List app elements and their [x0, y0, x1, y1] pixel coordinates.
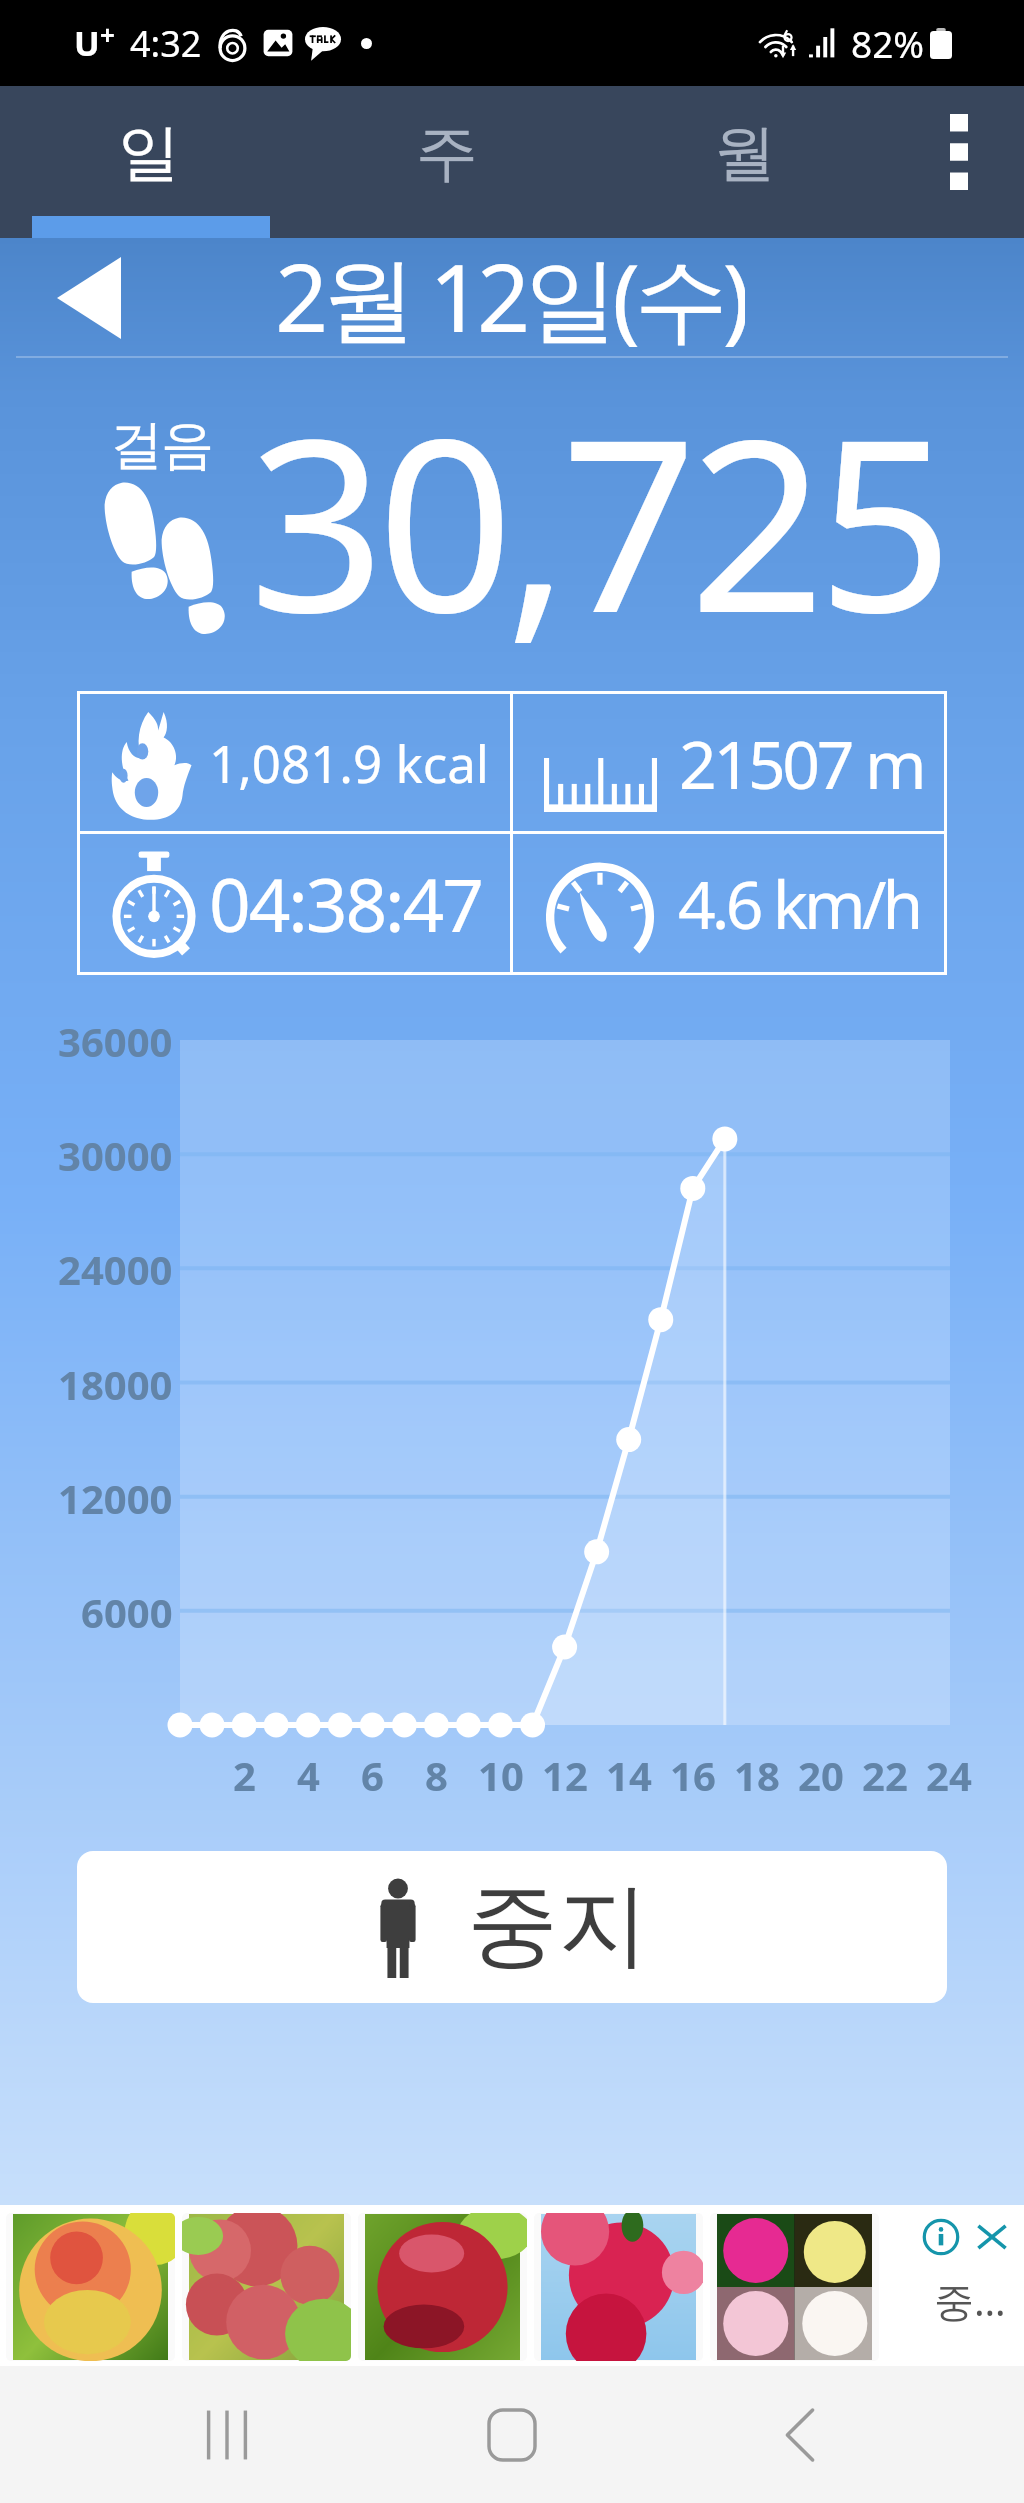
button[interactable]: [358, 2213, 527, 2361]
button[interactable]: 21507 m: [513, 694, 944, 831]
button[interactable]: [534, 2213, 703, 2361]
staticText: 주: [416, 114, 478, 192]
button[interactable]: 일: [0, 86, 298, 238]
staticText: 4: [297, 1748, 320, 1802]
staticText: +: [100, 17, 115, 52]
staticText: 14: [606, 1748, 652, 1802]
staticText: 30,725: [249, 358, 946, 682]
staticText: 중지: [467, 1868, 649, 1983]
button[interactable]: 중지: [77, 1851, 947, 2003]
staticText: 12000: [58, 1471, 173, 1525]
button[interactable]: More options: [894, 86, 1024, 238]
staticText: 16: [670, 1748, 716, 1802]
staticText: 8: [425, 1748, 448, 1802]
staticText: 21507 m: [679, 718, 924, 808]
staticText: 12: [542, 1748, 588, 1802]
button[interactable]: [6, 2213, 175, 2361]
staticText: 04:38:47: [209, 854, 482, 953]
staticText: 10: [478, 1748, 524, 1802]
button[interactable]: 주: [298, 86, 596, 238]
button[interactable]: 월: [596, 86, 894, 238]
staticText: 6: [361, 1748, 384, 1802]
staticText: 20: [798, 1748, 844, 1802]
button[interactable]: Previous day: [37, 246, 141, 350]
button[interactable]: Ad info: [922, 2218, 960, 2256]
staticText: U: [74, 20, 100, 66]
staticText: 월: [714, 114, 776, 192]
staticText: 82%: [851, 18, 925, 68]
button[interactable]: 04:38:47: [80, 834, 510, 972]
button[interactable]: Home: [432, 2366, 592, 2503]
button[interactable]: Recent apps: [147, 2366, 307, 2503]
staticText: 중…: [934, 2273, 1006, 2328]
button[interactable]: [710, 2213, 879, 2361]
staticText: 24000: [58, 1242, 173, 1296]
staticText: 30000: [58, 1128, 173, 1182]
staticText: 4.6 km/h: [678, 858, 920, 948]
button[interactable]: [182, 2213, 351, 2361]
button[interactable]: Close ad: [972, 2217, 1012, 2257]
button[interactable]: Back: [720, 2366, 880, 2503]
staticText: 6000: [81, 1585, 173, 1639]
staticText: 일: [118, 114, 180, 192]
staticText: 2: [233, 1748, 256, 1802]
staticText: 4:32: [130, 19, 202, 68]
button[interactable]: 4.6 km/h: [513, 834, 944, 972]
staticText: 18: [734, 1748, 780, 1802]
button[interactable]: 1,081.9 kcal: [80, 694, 510, 831]
staticText: 36000: [58, 1014, 173, 1068]
staticText: 걸음: [111, 412, 213, 479]
staticText: 2월 12일(수): [275, 233, 745, 353]
staticText: 22: [862, 1748, 908, 1802]
staticText: 1,081.9 kcal: [209, 728, 489, 797]
staticText: 18000: [58, 1357, 173, 1411]
staticText: 24: [926, 1748, 972, 1802]
